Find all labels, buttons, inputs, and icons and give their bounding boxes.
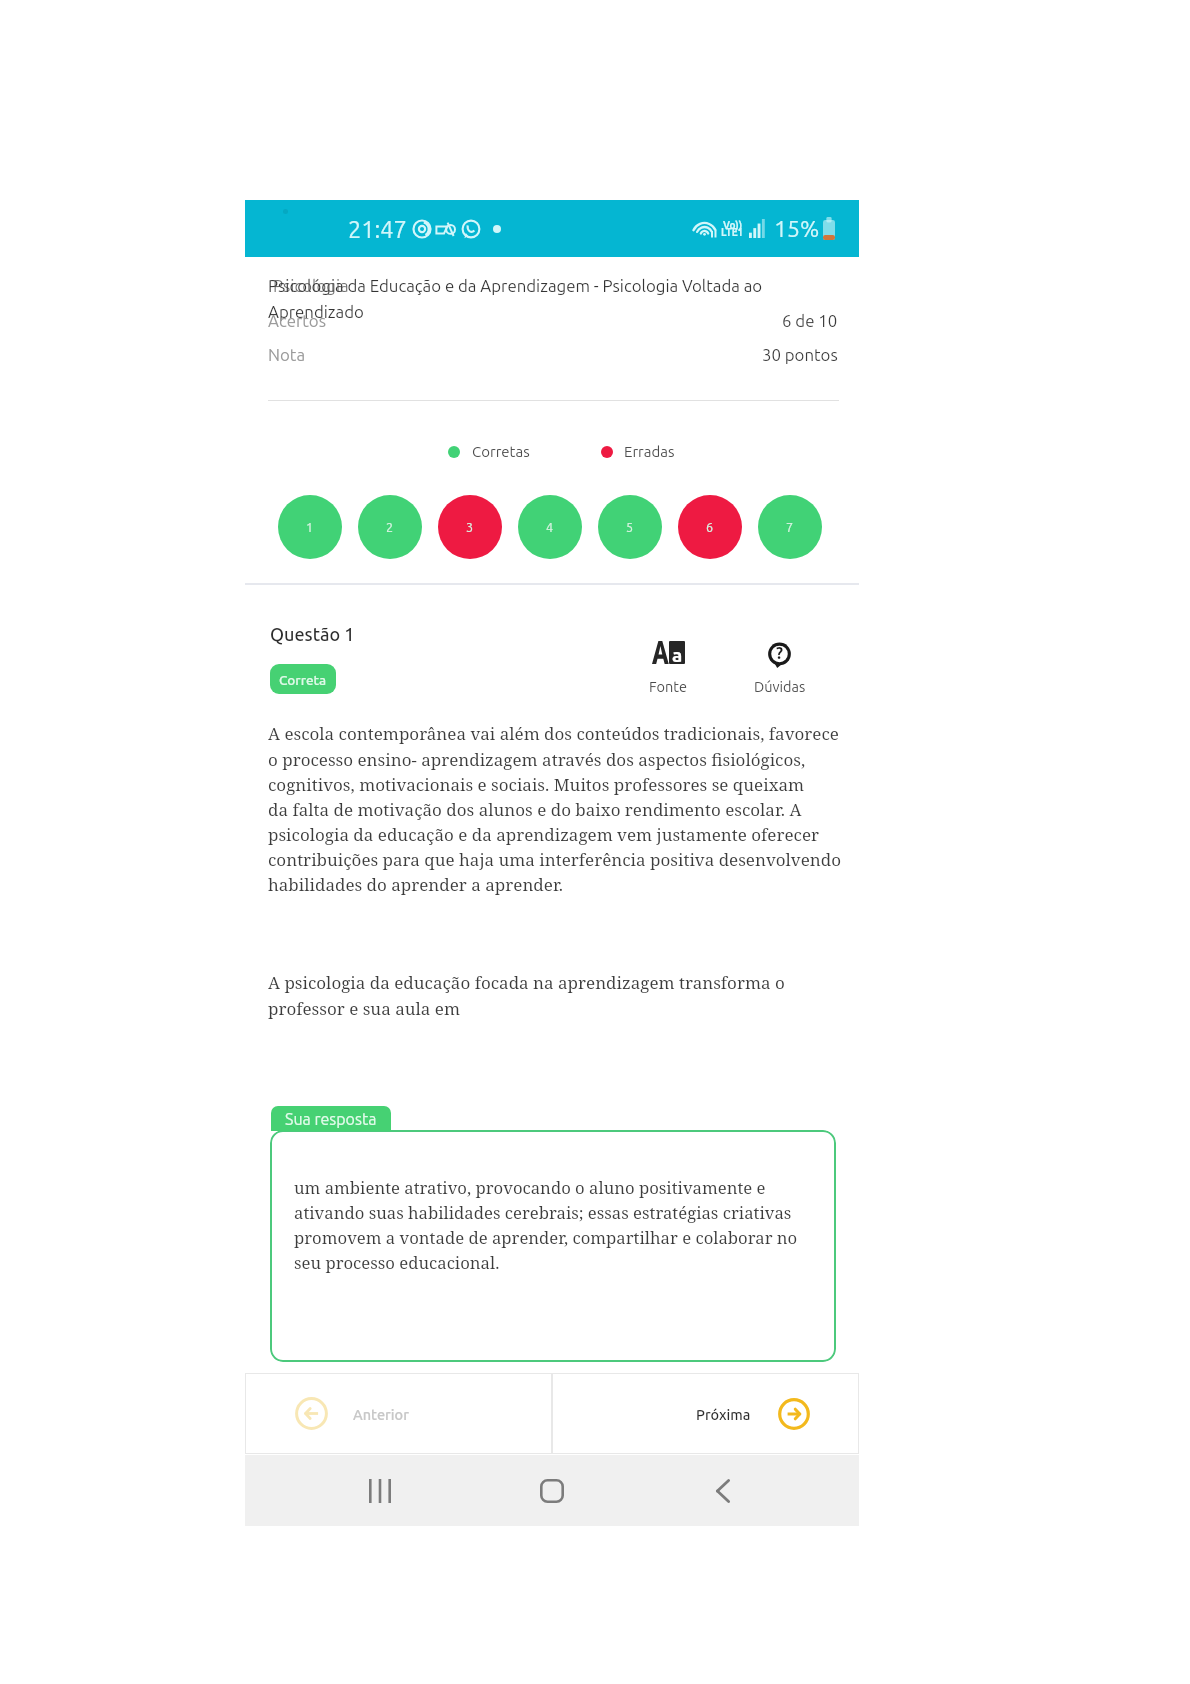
staticText: 1 [306,520,314,534]
button[interactable]: 6 [678,495,742,559]
staticText: 6 [706,520,714,534]
staticText: A escola contemporânea vai além dos cont… [268,722,841,896]
button[interactable]: Home [516,1455,588,1526]
button[interactable]: Recent apps [344,1455,416,1526]
staticText: Psicologia [273,276,349,295]
staticText: Erradas [624,443,675,460]
button[interactable]: Correta [270,664,336,694]
staticText: Fonte [649,678,688,694]
staticText: a [672,644,683,664]
button[interactable]: Dúvidas [749,641,810,694]
button[interactable]: 5 [598,495,662,559]
staticText: 5 [626,520,634,534]
staticText: Sua resposta [285,1110,377,1128]
staticText: Correta [279,672,327,687]
staticText: 21:47 [348,216,407,242]
staticText: 15% [774,216,820,242]
staticText: ? [776,644,784,662]
staticText: Nota [268,345,306,364]
button[interactable]: 2 [358,495,422,559]
button[interactable]: 1 [278,495,342,559]
staticText: Anterior [353,1406,409,1422]
staticText: A psicologia da educação focada na apren… [268,971,785,1020]
button[interactable]: Próxima [552,1373,859,1454]
button[interactable]: Back [687,1455,759,1526]
staticText: um ambiente atrativo, provocando o aluno… [294,1176,798,1274]
button[interactable]: 7 [758,495,822,559]
other: Fonte [652,641,685,664]
staticText: Dúvidas [754,678,806,694]
staticText: Psicológia da Educação e da Aprendizagem… [268,276,763,321]
staticText: 7 [786,520,794,534]
staticText: Vo)) [723,220,743,231]
staticText: Corretas [472,443,530,460]
staticText: 4 [546,520,554,534]
staticText: 6 de 10 [782,311,838,330]
button[interactable]: Anterior [245,1373,552,1454]
button[interactable]: 3 [438,495,502,559]
button[interactable]: Fonte [643,641,693,694]
staticText: Questão 1 [270,624,355,644]
staticText: 2 [386,520,394,534]
staticText: Acertos [268,311,326,330]
staticText: 30 pontos [762,345,838,364]
button[interactable]: 4 [518,495,582,559]
staticText: Próxima [696,1406,751,1422]
staticText: LTE1 [721,227,744,238]
other: Dúvidas [767,641,792,668]
staticText: 3 [466,520,474,534]
